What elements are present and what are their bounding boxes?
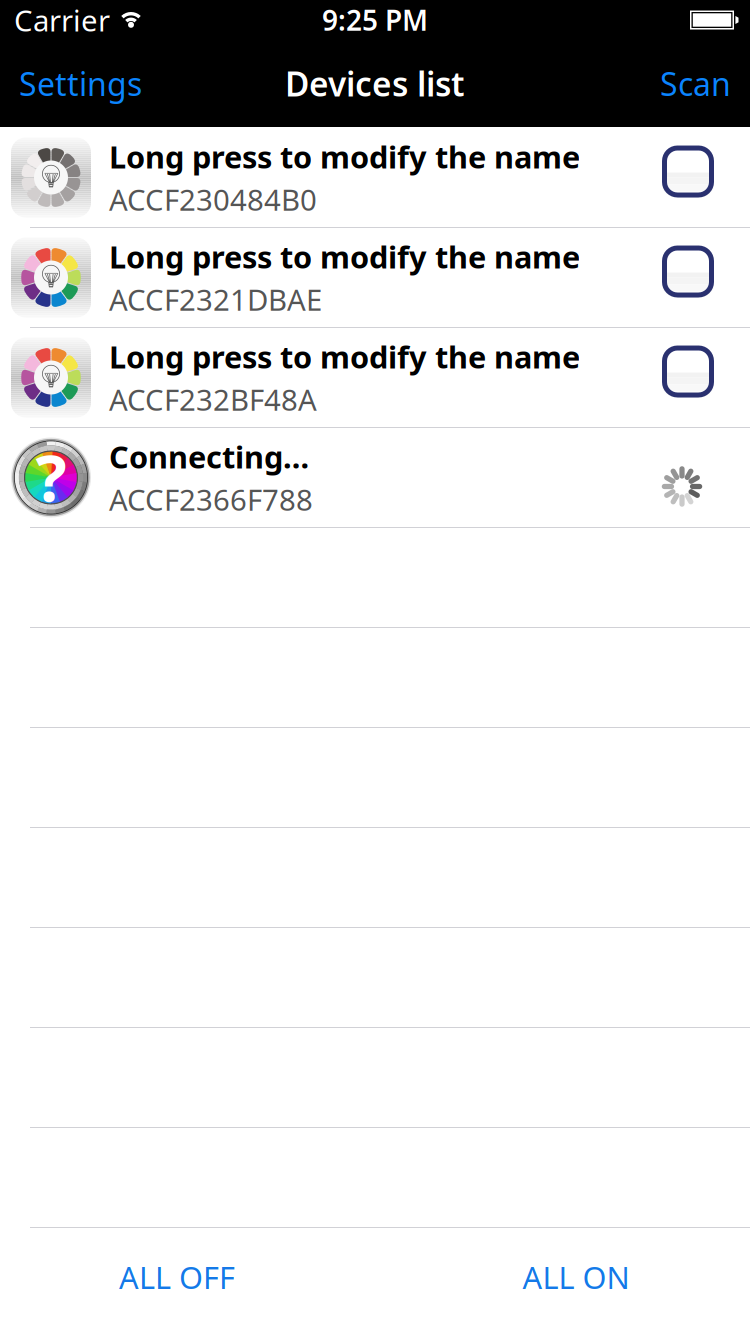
button[interactable]: Long press to modify the name [0,328,750,428]
staticText: Scan [660,62,731,105]
staticText: 9:25 PM [322,1,428,39]
staticText: ALL ON [522,1257,629,1297]
button[interactable]: Scan [648,52,750,115]
staticText: Long press to modify the name [109,336,580,377]
staticText: ACCF230484B0 [109,180,317,219]
button[interactable]: ALL OFF [0,1252,354,1334]
staticText: ALL OFF [119,1257,235,1297]
staticText: ACCF2366F788 [109,480,313,519]
button[interactable]: Long press to modify the name [0,228,750,328]
button[interactable]: ALL ON [354,1252,750,1334]
staticText: Long press to modify the name [109,136,580,177]
button[interactable]: ? [0,428,750,528]
staticText: Long press to modify the name [109,236,580,277]
staticText: ACCF232BF48A [109,380,317,419]
button[interactable]: Long press to modify the name [0,128,750,228]
staticText: Carrier [14,0,110,39]
staticText: Settings [19,62,142,105]
staticText: Devices list [285,61,465,106]
staticText: ? [35,433,66,520]
staticText: Connecting… [109,436,309,477]
staticText: ACCF2321DBAE [109,280,322,319]
button[interactable]: Settings [0,52,154,115]
